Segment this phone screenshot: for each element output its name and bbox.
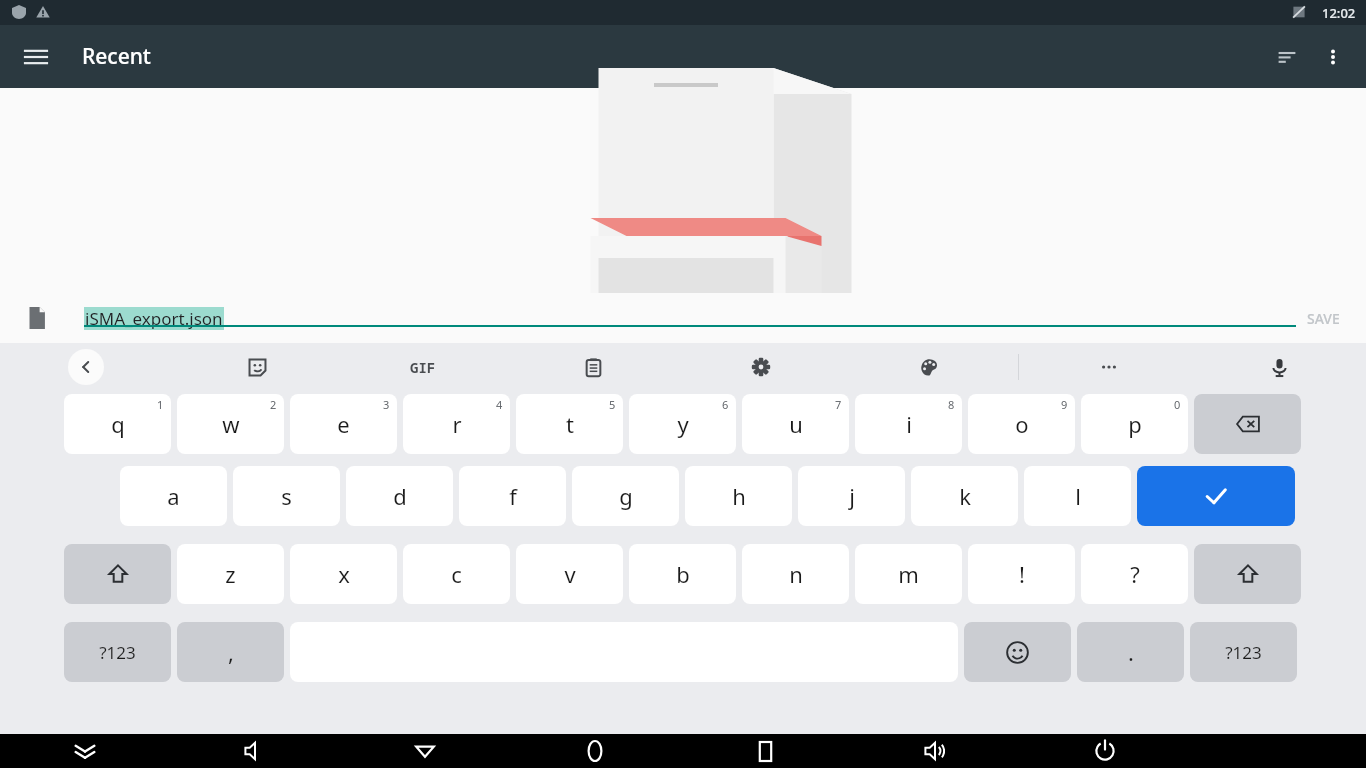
button[interactable]: Recents <box>680 734 850 768</box>
staticText: k <box>959 481 971 511</box>
button[interactable]: Home <box>510 734 680 768</box>
button[interactable]: Voice input <box>1260 348 1298 386</box>
button[interactable]: i <box>855 394 962 454</box>
staticText: , <box>228 637 234 667</box>
button[interactable]: Shift <box>1194 544 1301 604</box>
button[interactable]: x <box>290 544 397 604</box>
staticText: j <box>849 481 855 511</box>
staticText: b <box>676 559 690 589</box>
button[interactable]: s <box>233 466 340 526</box>
button[interactable]: Sort <box>1264 34 1310 80</box>
staticText: i <box>906 409 912 439</box>
staticText: t <box>566 409 574 439</box>
staticText: f <box>509 481 517 511</box>
button[interactable]: Backspace <box>1194 394 1301 454</box>
button[interactable]: More options <box>1310 34 1356 80</box>
button[interactable]: y <box>629 394 736 454</box>
button[interactable]: File <box>20 301 54 335</box>
button[interactable]: More <box>1090 348 1128 386</box>
button[interactable]: e <box>290 394 397 454</box>
button[interactable]: Stickers <box>238 348 276 386</box>
button[interactable]: Volume up <box>850 734 1020 768</box>
staticText: s <box>281 481 292 511</box>
button[interactable]: Enter <box>1137 466 1295 526</box>
button[interactable]: k <box>911 466 1018 526</box>
button[interactable]: SAVE <box>1297 301 1350 336</box>
staticText: . <box>1128 637 1134 667</box>
button[interactable]: w <box>177 394 284 454</box>
staticText: ?123 <box>1225 641 1262 664</box>
button[interactable]: Settings <box>742 348 780 386</box>
button[interactable]: . <box>1077 622 1184 682</box>
button[interactable]: Back <box>68 349 104 385</box>
button[interactable]: f <box>459 466 566 526</box>
staticText: a <box>167 481 180 511</box>
staticText: l <box>1075 481 1081 511</box>
button[interactable]: c <box>403 544 510 604</box>
staticText: d <box>393 481 407 511</box>
staticText: y <box>677 409 689 439</box>
button[interactable]: p <box>1081 394 1188 454</box>
staticText: 0 <box>1174 397 1181 412</box>
staticText: n <box>789 559 803 589</box>
button[interactable]: ! <box>968 544 1075 604</box>
button[interactable]: m <box>855 544 962 604</box>
button[interactable]: Back <box>340 734 510 768</box>
staticText: 3 <box>383 397 390 412</box>
button[interactable]: Clipboard <box>574 348 612 386</box>
button[interactable]: Theme <box>910 348 948 386</box>
staticText: 1 <box>157 397 164 412</box>
button[interactable]: z <box>177 544 284 604</box>
staticText: o <box>1015 409 1029 439</box>
staticText: w <box>222 409 240 439</box>
button[interactable]: r <box>403 394 510 454</box>
button[interactable]: t <box>516 394 623 454</box>
button[interactable]: ?123 <box>64 622 171 682</box>
button[interactable]: l <box>1024 466 1131 526</box>
staticText: r <box>452 409 462 439</box>
button[interactable]: b <box>629 544 736 604</box>
staticText: e <box>337 409 350 439</box>
button[interactable]: o <box>968 394 1075 454</box>
staticText: g <box>619 481 633 511</box>
staticText: 9 <box>1061 397 1068 412</box>
button[interactable]: GIF <box>400 344 446 390</box>
button[interactable]: v <box>516 544 623 604</box>
button[interactable]: , <box>177 622 284 682</box>
button[interactable]: Hide keyboard <box>0 734 170 768</box>
staticText: ? <box>1130 559 1140 589</box>
staticText: Recent <box>82 42 151 71</box>
staticText: iSMA_export.json <box>85 307 223 330</box>
button[interactable]: ? <box>1081 544 1188 604</box>
staticText: 5 <box>609 397 616 412</box>
button[interactable]: u <box>742 394 849 454</box>
staticText: 6 <box>722 397 729 412</box>
staticText: 7 <box>835 397 842 412</box>
button[interactable]: Volume down <box>170 734 340 768</box>
button[interactable]: Power <box>1020 734 1190 768</box>
button[interactable]: j <box>798 466 905 526</box>
staticText: c <box>451 559 462 589</box>
button[interactable]: q <box>64 394 171 454</box>
button[interactable]: n <box>742 544 849 604</box>
staticText: 2 <box>270 397 277 412</box>
button[interactable]: a <box>120 466 227 526</box>
staticText: v <box>564 559 576 589</box>
button[interactable]: d <box>346 466 453 526</box>
button[interactable]: h <box>685 466 792 526</box>
staticText: p <box>1128 409 1142 439</box>
button[interactable]: ?123 <box>1190 622 1297 682</box>
staticText: ! <box>1019 559 1025 589</box>
button[interactable]: Shift <box>64 544 171 604</box>
button[interactable]: Emoji <box>964 622 1071 682</box>
button[interactable]: g <box>572 466 679 526</box>
staticText: z <box>225 559 236 589</box>
staticText: x <box>338 559 350 589</box>
staticText: h <box>732 481 746 511</box>
staticText: 12:02 <box>1322 4 1356 22</box>
button[interactable]: Open navigation menu <box>14 35 58 79</box>
staticText: 4 <box>496 397 503 412</box>
staticText: GIF <box>410 358 436 377</box>
staticText: u <box>789 409 803 439</box>
